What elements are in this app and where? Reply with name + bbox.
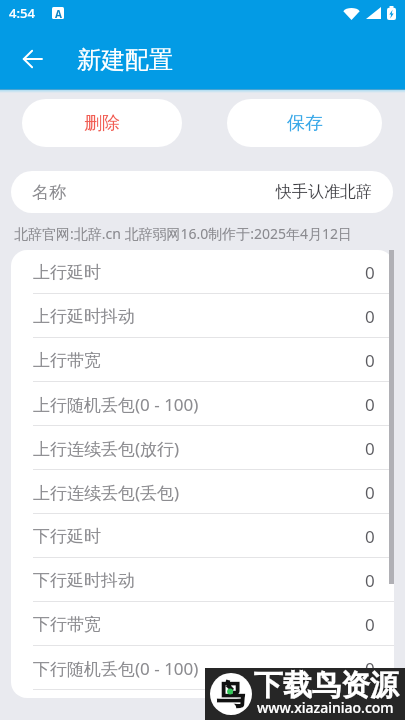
staticText: 快手认准北辞 (276, 182, 372, 202)
staticText: 下行带宽 (33, 614, 101, 635)
staticText: 下行延时 (33, 526, 101, 547)
staticText: 0 (365, 349, 375, 372)
button[interactable]: 上行随机丢包(0 - 100) (11, 382, 394, 426)
staticText: 鸟 (217, 677, 245, 712)
staticText: 名称 (32, 182, 66, 203)
button[interactable]: 下行随机丢包(0 - 100) (11, 646, 394, 690)
button[interactable]: 下行带宽 (11, 602, 394, 646)
staticText: 0 (365, 525, 375, 548)
staticText: 下行随机丢包(0 - 100) (33, 657, 199, 680)
staticText: 删除 (84, 112, 120, 135)
staticText: 0 (365, 305, 375, 328)
staticText: 0 (365, 481, 375, 504)
staticText: 上行连续丢包(丢包) (33, 481, 180, 504)
staticText: 保存 (287, 112, 323, 135)
button[interactable]: 下行延时 (11, 514, 394, 558)
button[interactable]: Back (10, 37, 54, 81)
button[interactable]: 上行连续丢包(丢包) (11, 470, 394, 514)
staticText: 0 (365, 437, 375, 460)
button[interactable]: 上行延时 (11, 250, 394, 294)
button[interactable]: 下行延时抖动 (11, 558, 394, 602)
button[interactable]: 上行连续丢包(放行) (11, 426, 394, 470)
staticText: 上行延时 (33, 262, 101, 283)
staticText: 0 (365, 261, 375, 284)
staticText: 0 (365, 657, 375, 680)
staticText: A (55, 7, 62, 19)
staticText: 北辞官网:北辞.cn 北辞弱网16.0制作于:2025年4月12日 (14, 224, 353, 243)
button[interactable]: 保存 (227, 99, 382, 147)
staticText: 上行延时抖动 (33, 306, 135, 327)
staticText: 下载鸟资源 (254, 667, 399, 704)
staticText: 0 (365, 613, 375, 636)
staticText: 新建配置 (77, 45, 173, 75)
staticText: 下行延时抖动 (33, 570, 135, 591)
staticText: www.xiazainiao.com (257, 698, 394, 717)
button[interactable]: 删除 (22, 99, 182, 147)
staticText: 上行随机丢包(0 - 100) (33, 393, 199, 416)
button[interactable]: 上行带宽 (11, 338, 394, 382)
staticText: 上行连续丢包(放行) (33, 437, 180, 460)
button[interactable]: 上行延时抖动 (11, 294, 394, 338)
staticText: 4:54 (9, 4, 35, 22)
staticText: 0 (365, 569, 375, 592)
staticText: 上行带宽 (33, 350, 101, 371)
button[interactable]: 名称 (11, 171, 393, 213)
staticText: 0 (365, 393, 375, 416)
